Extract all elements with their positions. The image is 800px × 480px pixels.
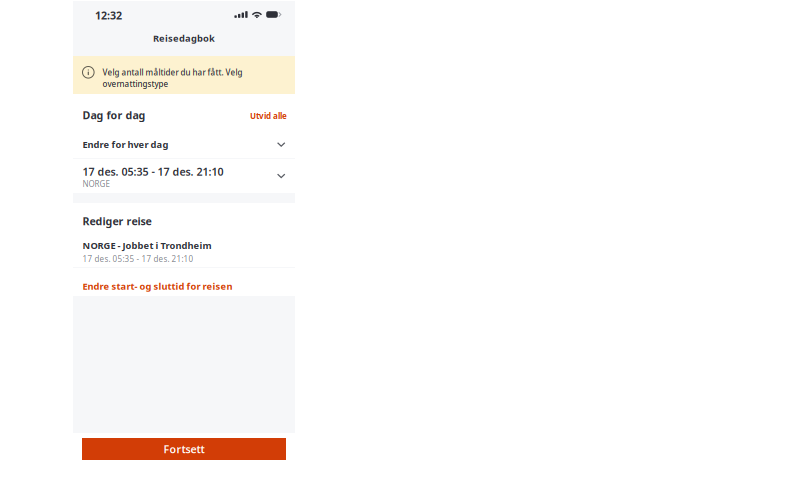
staticText: Fortsett xyxy=(163,442,204,456)
staticText: Velg antall måltider du har fått. Velg xyxy=(102,67,242,78)
staticText: Endre start- og sluttid for reisen xyxy=(82,280,232,292)
staticText: Utvid alle xyxy=(250,110,287,121)
staticText: 17 des. 05:35 - 17 des. 21:10 xyxy=(82,164,223,179)
staticText: Dag for dag xyxy=(82,108,145,122)
staticText: Endre for hver dag xyxy=(82,138,168,151)
staticText: NORGE - Jobbet i Trondheim xyxy=(82,239,211,252)
button[interactable]: Endre start- og sluttid for reisen xyxy=(73,268,295,296)
button[interactable]: Fortsett xyxy=(82,438,286,460)
staticText: NORGE xyxy=(82,179,109,189)
button[interactable]: Endre for hver dag xyxy=(73,131,295,158)
button[interactable]: Dag for dag xyxy=(73,94,295,131)
staticText: Reisedagbok xyxy=(153,32,215,44)
staticText: Rediger reise xyxy=(82,214,151,228)
staticText: 12:32 xyxy=(95,8,122,22)
staticText: overnattingstype xyxy=(102,79,168,89)
button[interactable]: 17 des. 05:35 - 17 des. 21:10 xyxy=(73,159,295,193)
staticText: 17 des. 05:35 - 17 des. 21:10 xyxy=(82,254,193,264)
